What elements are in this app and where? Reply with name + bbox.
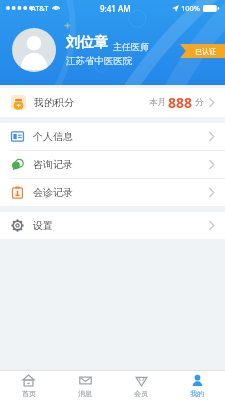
button[interactable]: 头像 (12, 28, 56, 72)
button[interactable]: 会诊记录 (0, 179, 225, 206)
staticText: AT&T (31, 3, 49, 13)
staticText: 100% (181, 3, 201, 13)
button[interactable]: 已认证 (180, 44, 225, 58)
button[interactable]: 会员 (113, 371, 169, 400)
staticText: 首页 (22, 389, 36, 398)
staticText: 消息 (78, 389, 92, 398)
staticText: 主任医师 (113, 41, 149, 52)
button[interactable]: 消息 (57, 371, 113, 400)
button[interactable]: 首页 (0, 371, 57, 400)
staticText: 本月 (149, 97, 166, 108)
button[interactable]: 个人信息 (0, 123, 225, 150)
button[interactable]: 我的 (169, 371, 225, 400)
staticText: 会员 (134, 389, 148, 398)
staticText: 我的 (190, 389, 204, 398)
staticText: 会诊记录 (33, 186, 73, 199)
staticText: 个人信息 (33, 130, 73, 143)
staticText: 设置 (33, 219, 53, 232)
staticText: 分 (195, 97, 204, 108)
staticText: 我的积分 (34, 96, 74, 109)
button[interactable]: 咨询记录 (0, 151, 225, 178)
button[interactable]: 我的积分 (0, 88, 225, 117)
staticText: 已认证 (195, 47, 216, 56)
button[interactable]: 设置 (0, 212, 225, 239)
staticText: 江苏省中医医院 (66, 55, 133, 67)
staticText: 咨询记录 (33, 158, 73, 171)
staticText: 刘位章 (66, 34, 108, 52)
staticText: 888 (168, 93, 193, 112)
staticText: 9:41 AM (100, 3, 131, 14)
